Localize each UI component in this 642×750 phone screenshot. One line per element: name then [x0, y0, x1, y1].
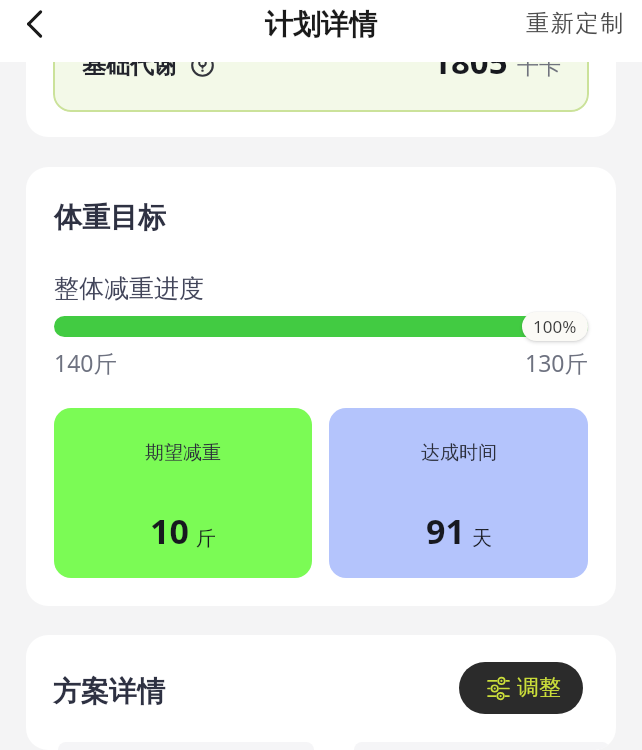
button[interactable]: 达成时间 [329, 408, 588, 578]
staticText: 计划详情 [265, 7, 377, 42]
staticText: 100% [533, 315, 577, 338]
staticText: 重新定制 [526, 9, 626, 38]
button[interactable]: Back [13, 2, 57, 46]
staticText: 斤 [196, 526, 216, 551]
staticText: 91 [426, 508, 465, 554]
staticText: 1805 [432, 62, 508, 84]
button[interactable]: 调整 [459, 662, 583, 714]
staticText: 天 [472, 526, 492, 551]
staticText: 千卡 [517, 62, 561, 81]
staticText: 基础代谢 [82, 62, 178, 80]
button[interactable]: 期望减重 [54, 408, 312, 578]
staticText: 130斤 [525, 347, 588, 378]
button[interactable]: 重新定制 [514, 5, 642, 46]
staticText: 140斤 [54, 347, 117, 378]
staticText: 达成时间 [421, 441, 497, 465]
staticText: 10 [150, 508, 189, 554]
staticText: 体重目标 [54, 200, 166, 235]
staticText: 整体减重进度 [54, 273, 204, 304]
staticText: 期望减重 [145, 441, 221, 465]
staticText: 方案详情 [53, 674, 165, 709]
staticText: 调整 [517, 674, 561, 702]
